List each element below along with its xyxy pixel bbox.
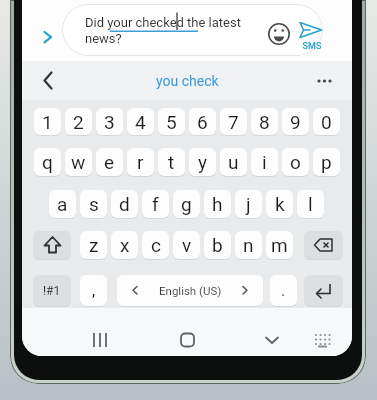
staticText: 7 [228,111,239,133]
button[interactable] [304,231,343,259]
staticText: n [243,234,254,256]
button[interactable]: m [266,231,293,259]
staticText: t [168,151,175,173]
staticText: b [212,234,223,256]
staticText: g [181,193,192,215]
button[interactable]: z [80,231,107,259]
button[interactable]: b [204,231,231,259]
button[interactable]: 8 [251,108,278,135]
staticText: l [308,193,313,215]
staticText: 5 [166,111,177,133]
button[interactable]: 0 [313,108,340,135]
staticText: you check [156,73,219,89]
staticText: p [321,151,332,173]
button[interactable] [80,310,120,354]
button[interactable] [304,275,343,306]
staticText: x [120,234,130,256]
staticText: 6 [197,111,208,133]
button[interactable]: k [266,190,293,218]
staticText: h [212,193,223,215]
button[interactable]: q [34,148,61,176]
staticText: English (US) [159,284,222,297]
staticText: o [290,151,301,173]
button[interactable]: you check [122,61,252,100]
button[interactable]: 5 [158,108,185,135]
staticText: z [89,234,99,256]
button[interactable]: 4 [127,108,154,135]
staticText: 2 [73,111,84,133]
button[interactable] [307,310,343,354]
staticText: !#1 [43,284,61,298]
button[interactable] [252,310,292,354]
button[interactable]: , [80,275,107,306]
staticText: Did your checked the latest [85,15,241,30]
button[interactable]: 3 [96,108,123,135]
button[interactable]: 1 [34,108,61,135]
staticText: 8 [259,111,270,133]
staticText: 9 [290,111,301,133]
button[interactable]: l [297,190,324,218]
staticText: 3 [104,111,115,133]
button[interactable]: c [142,231,169,259]
button[interactable]: !#1 [33,275,71,306]
button[interactable]: f [142,190,169,218]
button[interactable]: o [282,148,309,176]
staticText: k [275,193,285,215]
button[interactable]: English (US) [117,275,263,306]
button[interactable]: p [313,148,340,176]
staticText: 0 [321,111,332,133]
staticText: s [89,193,99,215]
staticText: e [104,151,115,173]
button[interactable]: x [111,231,138,259]
button[interactable]: 6 [189,108,216,135]
button[interactable]: s [80,190,107,218]
button[interactable]: a [49,190,76,218]
staticText: f [152,193,159,215]
button[interactable] [62,4,323,56]
staticText: i [262,151,267,173]
staticText: m [271,234,288,256]
staticText: r [137,151,144,173]
button[interactable]: u [220,148,247,176]
button[interactable]: d [111,190,138,218]
button[interactable]: j [235,190,262,218]
staticText: , [92,281,96,300]
staticText: q [42,151,53,173]
button[interactable]: 9 [282,108,309,135]
button[interactable]: w [65,148,92,176]
staticText: SMS [301,41,323,53]
staticText: 1 [42,111,53,133]
button[interactable] [167,310,207,354]
button[interactable]: i [251,148,278,176]
button[interactable]: 2 [65,108,92,135]
button[interactable]: n [235,231,262,259]
staticText: a [57,193,68,215]
button[interactable] [33,231,71,259]
staticText: d [119,193,130,215]
button[interactable]: . [270,275,297,306]
button[interactable]: e [96,148,123,176]
staticText: . [281,281,286,300]
staticText: y [198,151,207,173]
staticText: 4 [135,111,146,133]
staticText: v [182,234,192,256]
button[interactable]: 7 [220,108,247,135]
button[interactable]: g [173,190,200,218]
button[interactable]: h [204,190,231,218]
staticText: c [151,234,161,256]
button[interactable]: r [127,148,154,176]
staticText: u [228,151,239,173]
staticText: j [246,193,251,215]
button[interactable]: y [189,148,216,176]
staticText: news? [85,31,122,46]
button[interactable]: v [173,231,200,259]
staticText: w [71,151,86,173]
button[interactable]: t [158,148,185,176]
